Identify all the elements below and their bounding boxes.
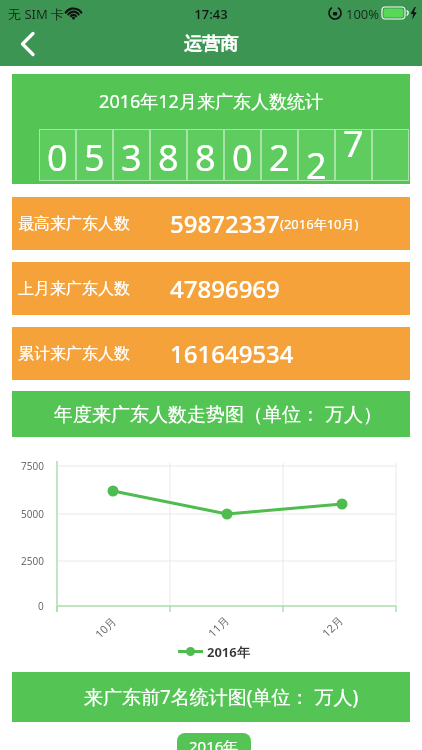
staticText: 161649534: [170, 337, 294, 370]
staticText: 年度来广东人数走势图（单位： 万人）: [54, 401, 382, 427]
staticText: 8: [195, 133, 216, 182]
staticText: 3: [121, 133, 142, 182]
button[interactable]: 上月来广东人数: [12, 262, 410, 315]
staticText: 17:43: [0, 5, 422, 23]
staticText: 0: [38, 599, 44, 613]
staticText: 7500: [21, 459, 44, 473]
staticText: 8: [158, 133, 179, 182]
staticText: 59872337: [170, 207, 280, 240]
button[interactable]: 2016年: [177, 733, 251, 750]
staticText: 7: [343, 119, 364, 168]
staticText: 运营商: [0, 33, 422, 56]
staticText: 12月: [319, 613, 346, 640]
staticText: 5: [84, 133, 105, 182]
staticText: 累计来广东人数: [18, 344, 130, 364]
staticText: 0: [47, 133, 68, 182]
staticText: 5000: [21, 507, 44, 521]
button[interactable]: [6, 28, 50, 60]
staticText: 2016年: [207, 643, 250, 661]
staticText: 2500: [21, 554, 44, 568]
staticText: 2016年12月来广东人数统计: [12, 89, 410, 114]
staticText: 0: [232, 133, 253, 182]
staticText: 47896969: [170, 272, 280, 305]
staticText: 来广东前7名统计图(单位： 万人): [84, 684, 359, 710]
staticText: 2: [306, 141, 327, 190]
staticText: 上月来广东人数: [18, 279, 130, 299]
staticText: 100%: [346, 5, 380, 23]
staticText: (2016年10月): [280, 215, 359, 233]
staticText: 无 SIM 卡: [8, 5, 65, 23]
button[interactable]: 最高来广东人数: [12, 197, 410, 250]
button[interactable]: 累计来广东人数: [12, 327, 410, 380]
staticText: 2: [269, 133, 290, 182]
staticText: 2016年: [189, 736, 239, 750]
staticText: 11月: [205, 613, 232, 640]
staticText: 最高来广东人数: [18, 214, 130, 234]
staticText: 10月: [92, 614, 119, 641]
